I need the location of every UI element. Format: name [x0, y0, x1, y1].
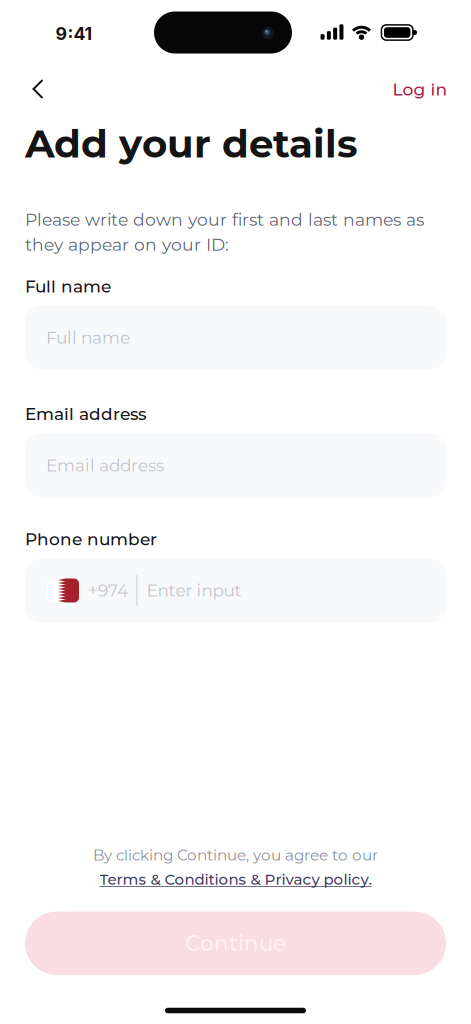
button[interactable]: Full name — [25, 306, 446, 370]
button[interactable]: Email address — [25, 433, 446, 497]
staticText: Please write down your first and last na… — [25, 209, 424, 255]
staticText: Continue — [185, 930, 286, 956]
staticText: By clicking Continue, you agree to our — [93, 846, 378, 864]
staticText: Full name — [25, 276, 111, 297]
button[interactable]: Log in — [392, 79, 447, 100]
staticText: Enter input — [147, 580, 242, 601]
button[interactable]: Continue — [25, 911, 446, 975]
staticText: +974 — [88, 580, 128, 601]
staticText: Phone number — [25, 529, 157, 549]
button[interactable]: Back — [22, 74, 52, 104]
staticText: Add your details — [25, 120, 358, 167]
button[interactable]: Phone number — [25, 558, 446, 622]
button[interactable]: Terms & Conditions & Privacy policy. — [99, 870, 371, 888]
staticText: Log in — [392, 79, 447, 100]
staticText: Terms & Conditions & Privacy policy. — [99, 870, 371, 888]
staticText: 9:41 — [55, 23, 92, 44]
staticText: Email address — [46, 455, 164, 476]
staticText: Full name — [46, 327, 130, 348]
staticText: Email address — [25, 404, 146, 424]
